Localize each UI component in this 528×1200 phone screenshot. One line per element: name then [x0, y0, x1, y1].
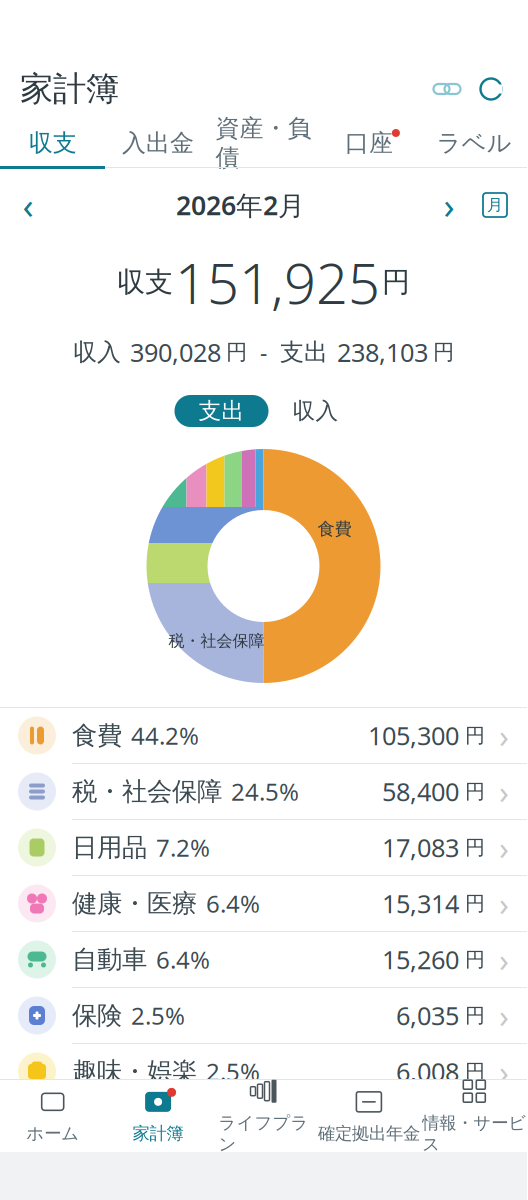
- button[interactable]: 収支: [0, 120, 105, 166]
- staticText: ›: [499, 882, 509, 925]
- staticText: 円: [465, 947, 485, 972]
- staticText: ライフプラン: [218, 1112, 308, 1155]
- staticText: 円: [465, 1003, 485, 1028]
- staticText: ラベル: [437, 128, 512, 158]
- button[interactable]: 入出金: [105, 120, 211, 166]
- button[interactable]: 情報・サービス: [422, 1077, 527, 1155]
- button[interactable]: 収入: [278, 395, 352, 427]
- staticText: 支出: [280, 337, 328, 367]
- staticText: 24.5%: [231, 776, 299, 807]
- staticText: 収入: [292, 397, 338, 425]
- staticText: 月: [487, 195, 503, 215]
- button[interactable]: 次の月: [425, 182, 473, 228]
- staticText: ›: [499, 770, 509, 813]
- button[interactable]: 税・社会保障: [0, 764, 527, 820]
- staticText: 2026年2月: [176, 187, 305, 223]
- staticText: 2.5%: [206, 1056, 260, 1087]
- staticText: 自動車: [72, 944, 147, 975]
- button[interactable]: 月を選択: [473, 183, 527, 227]
- staticText: 食費: [72, 720, 122, 751]
- button[interactable]: 更新: [469, 67, 527, 111]
- staticText: 105,300: [368, 719, 459, 752]
- staticText: 収支: [117, 265, 173, 299]
- staticText: 入出金: [122, 128, 194, 158]
- staticText: 円: [382, 265, 410, 299]
- button[interactable]: 前の月: [0, 182, 56, 228]
- staticText: ›: [499, 826, 509, 869]
- staticText: ›: [499, 714, 509, 757]
- staticText: 円: [465, 891, 485, 916]
- staticText: 税・社会保障: [168, 631, 264, 651]
- button[interactable]: 支出: [174, 395, 268, 427]
- staticText: 家計簿: [133, 1123, 184, 1144]
- staticText: 6.4%: [156, 944, 210, 975]
- button[interactable]: 連携: [425, 67, 469, 111]
- button[interactable]: ホーム: [0, 1088, 105, 1144]
- staticText: 7.2%: [156, 832, 210, 863]
- staticText: 健康・医療: [72, 888, 197, 919]
- button[interactable]: ラベル: [422, 120, 527, 166]
- staticText: 収入: [73, 337, 121, 367]
- staticText: 税・社会保障: [72, 776, 222, 807]
- staticText: -: [260, 337, 267, 367]
- staticText: ‹: [22, 181, 33, 229]
- staticText: 食費: [317, 518, 351, 540]
- staticText: 円: [433, 339, 454, 365]
- button[interactable]: 保険: [0, 988, 527, 1044]
- staticText: 保険: [72, 1000, 122, 1031]
- staticText: 17,083: [382, 831, 459, 864]
- staticText: 390,028: [130, 335, 221, 369]
- button[interactable]: 確定拠出年金: [316, 1088, 422, 1144]
- staticText: 2.5%: [131, 1000, 185, 1031]
- staticText: 円: [465, 835, 485, 860]
- staticText: 15,260: [382, 943, 459, 976]
- staticText: ›: [443, 181, 454, 229]
- button[interactable]: 趣味・娯楽: [0, 1044, 527, 1100]
- button[interactable]: 健康・医療: [0, 876, 527, 932]
- staticText: ホーム: [26, 1123, 79, 1144]
- button[interactable]: 家計簿: [105, 1088, 211, 1144]
- staticText: 情報・サービス: [422, 1112, 526, 1155]
- staticText: 収支: [29, 128, 77, 158]
- staticText: 151,925: [175, 245, 380, 319]
- staticText: 44.2%: [131, 720, 199, 751]
- staticText: 円: [465, 779, 485, 804]
- staticText: 円: [226, 339, 247, 365]
- staticText: 58,400: [382, 775, 459, 808]
- button[interactable]: 資産・負債: [211, 120, 316, 166]
- staticText: 趣味・娯楽: [72, 1056, 197, 1087]
- staticText: ›: [499, 1050, 509, 1093]
- staticText: 家計簿: [20, 68, 119, 109]
- staticText: 円: [465, 1059, 485, 1084]
- staticText: ›: [499, 994, 509, 1037]
- staticText: 口座: [345, 128, 393, 158]
- button[interactable]: ライフプラン: [211, 1077, 316, 1155]
- staticText: 支出: [198, 397, 244, 425]
- staticText: 6,008: [396, 1055, 459, 1088]
- staticText: 6.4%: [206, 888, 260, 919]
- button[interactable]: 口座: [316, 120, 422, 166]
- staticText: ›: [499, 938, 509, 981]
- staticText: 確定拠出年金: [318, 1123, 420, 1144]
- staticText: 円: [465, 723, 485, 748]
- staticText: 6,035: [396, 999, 459, 1032]
- staticText: 238,103: [337, 335, 428, 369]
- button[interactable]: 自動車: [0, 932, 527, 988]
- button[interactable]: 食費: [0, 708, 527, 764]
- staticText: 資産・負債: [215, 113, 311, 172]
- staticText: 日用品: [72, 832, 147, 863]
- staticText: 15,314: [382, 887, 459, 920]
- button[interactable]: 日用品: [0, 820, 527, 876]
